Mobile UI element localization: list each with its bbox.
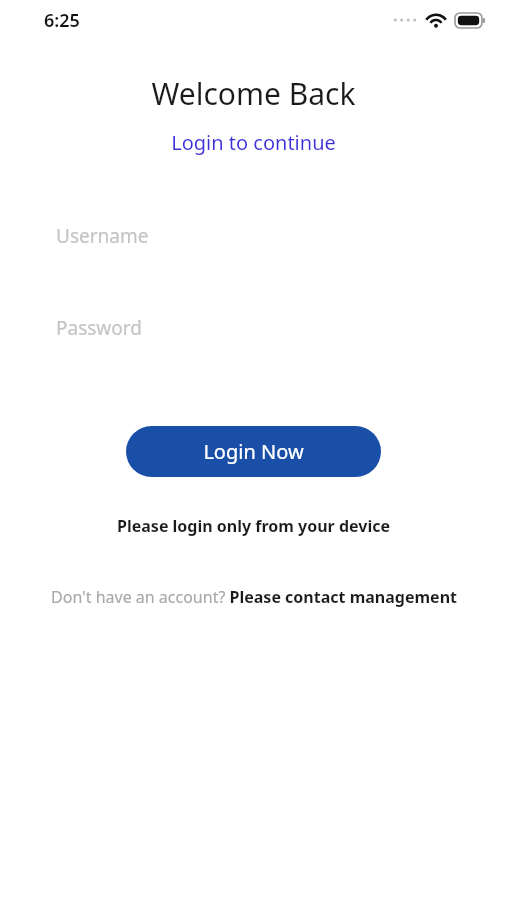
button[interactable]: Password field (0, 313, 507, 343)
button[interactable]: Don't have an account? Please contact ma… (0, 586, 507, 608)
staticText: Please login only from your device (117, 515, 390, 537)
staticText: Don't have an account? Please contact ma… (51, 586, 457, 608)
staticText: Password (56, 315, 142, 341)
staticText: Username (56, 223, 149, 249)
staticText: Login to continue (171, 129, 336, 156)
button[interactable]: Login Now (126, 426, 381, 477)
staticText: Welcome Back (151, 73, 356, 114)
staticText: 6:25 (44, 8, 80, 33)
staticText: Login Now (203, 438, 304, 465)
button[interactable]: Username field (0, 221, 507, 251)
